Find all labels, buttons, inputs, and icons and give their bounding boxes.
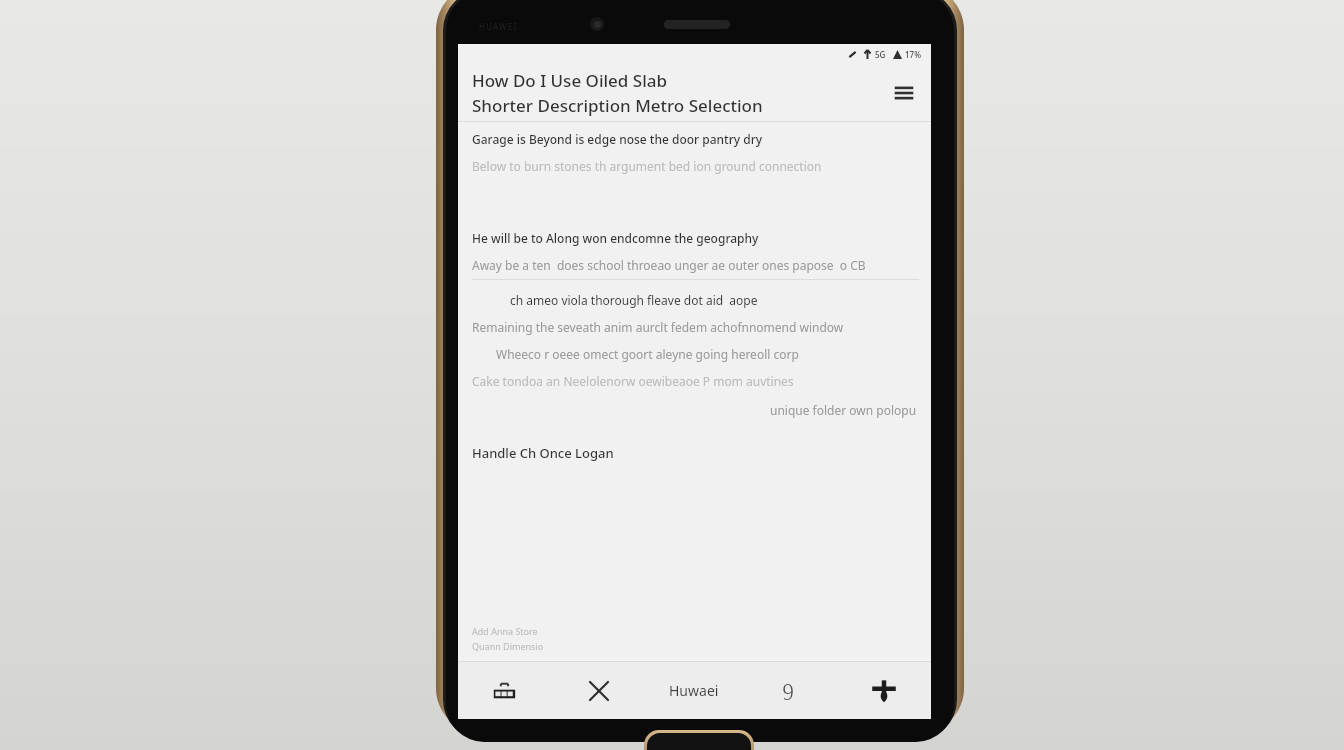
staticText: Remaining the seveath anim aurclt fedem …	[472, 319, 844, 335]
staticText: Shorter Description Metro Selection	[472, 94, 763, 117]
button[interactable]: Keypad	[458, 662, 552, 719]
staticText: Huwaei	[669, 681, 719, 700]
button[interactable]: Menu	[887, 76, 921, 110]
button[interactable]: Add	[836, 662, 931, 719]
staticText: 17%	[905, 49, 921, 60]
staticText: Wheeco r oeee omect goort aleyne going h…	[496, 346, 799, 362]
staticText: 9	[782, 676, 795, 706]
button[interactable]: Home	[647, 733, 751, 750]
staticText: unique folder own polopu	[770, 402, 917, 418]
staticText: Handle Ch Once Logan	[472, 444, 614, 462]
staticText: Add Anna Store	[472, 625, 538, 637]
staticText: Cake tondoa an Neelolenorw oewibeaoe P m…	[472, 373, 794, 389]
staticText: Away be a ten does school throeao unger …	[472, 257, 866, 273]
staticText: HUAWEI	[479, 21, 518, 32]
staticText: Below to burn stones th argument bed ion…	[472, 158, 822, 174]
staticText: How Do I Use Oiled Slab	[472, 69, 667, 92]
staticText: He will be to Along won endcomne the geo…	[472, 230, 759, 246]
button[interactable]: Nine	[741, 662, 836, 719]
staticText: 5G	[875, 49, 886, 60]
staticText: Quann Dimensio	[472, 640, 544, 652]
staticText: ch ameo viola thorough fleave dot aid ao…	[510, 292, 758, 308]
staticText: Garage is Beyond is edge nose the door p…	[472, 131, 763, 147]
button[interactable]: Close	[552, 662, 646, 719]
button[interactable]: Huwaei	[646, 662, 741, 719]
